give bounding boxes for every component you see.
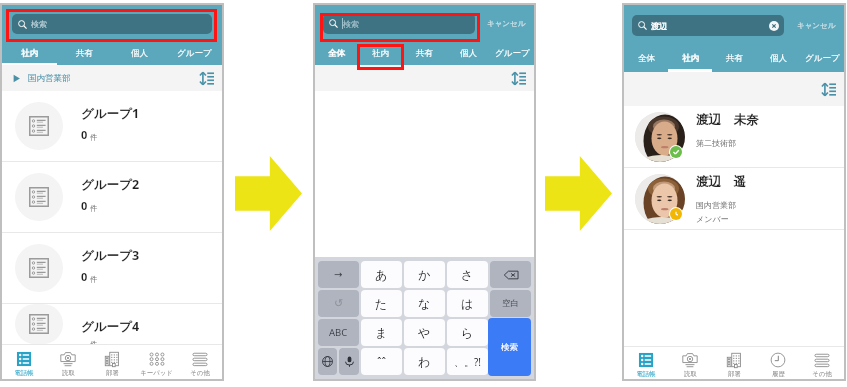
staticText: 検索 xyxy=(501,342,518,353)
staticText: 、。?! xyxy=(454,355,482,369)
staticText: キャンセル xyxy=(797,21,836,30)
button[interactable]: キャンセル xyxy=(797,21,836,30)
staticText: グループ4 xyxy=(81,318,140,335)
button[interactable]: ABC xyxy=(318,319,359,346)
staticText: 件 xyxy=(90,340,98,344)
staticText: 読取 xyxy=(684,370,697,378)
button[interactable]: 共有 xyxy=(712,45,756,72)
button[interactable]: 共有 xyxy=(57,42,112,65)
staticText: 検索 xyxy=(343,19,359,29)
staticText: た xyxy=(375,296,388,311)
button[interactable]: 、。?! xyxy=(447,348,488,375)
button[interactable]: 部署 xyxy=(712,347,756,379)
button[interactable]: グループ xyxy=(490,42,534,65)
staticText: グループ xyxy=(495,48,530,59)
staticText: 全体 xyxy=(328,48,345,59)
button[interactable]: ↺ xyxy=(318,290,359,317)
button[interactable]: 電話帳 xyxy=(624,347,668,379)
button[interactable]: グループ2 xyxy=(2,162,222,232)
staticText: あ xyxy=(375,267,388,282)
staticText: ま xyxy=(375,325,388,340)
button[interactable]: グループ4 xyxy=(2,304,222,344)
button[interactable]: グループ xyxy=(167,42,222,65)
staticText: キーパッド xyxy=(140,369,173,377)
staticText: 空白 xyxy=(502,298,519,309)
button[interactable]: は xyxy=(447,290,488,317)
staticText: 渡辺 xyxy=(651,21,667,31)
button[interactable]: Backspace xyxy=(490,261,531,288)
button[interactable]: 全体 xyxy=(315,42,358,65)
button[interactable]: Sort xyxy=(199,71,214,86)
button[interactable]: 履歴 xyxy=(756,347,800,379)
button[interactable]: た xyxy=(361,290,402,317)
button[interactable]: 渡辺 未奈 xyxy=(624,106,844,167)
button[interactable]: 渡辺 遥 xyxy=(624,168,844,229)
button[interactable]: Sort xyxy=(821,82,836,97)
staticText: グループ xyxy=(177,48,212,59)
button[interactable]: その他 xyxy=(800,347,844,379)
button[interactable]: ら xyxy=(447,319,488,346)
button[interactable]: 読取 xyxy=(46,345,90,379)
staticText: グループ3 xyxy=(81,247,140,264)
button[interactable]: Sort xyxy=(511,71,526,86)
staticText: か xyxy=(418,267,431,282)
staticText: → xyxy=(334,269,343,281)
staticText: は xyxy=(461,296,474,311)
staticText: 読取 xyxy=(62,369,75,377)
button[interactable]: 読取 xyxy=(668,347,712,379)
button[interactable]: Microphone xyxy=(339,348,359,375)
button[interactable]: その他 xyxy=(178,345,222,379)
button[interactable]: な xyxy=(404,290,445,317)
button[interactable]: 個人 xyxy=(446,42,490,65)
staticText: 共有 xyxy=(76,48,93,59)
button[interactable]: や xyxy=(404,319,445,346)
staticText: 件 xyxy=(90,275,98,284)
staticText: 社内 xyxy=(682,53,699,64)
staticText: 検索 xyxy=(31,19,47,29)
button[interactable]: 個人 xyxy=(756,45,800,72)
button[interactable]: 社内 xyxy=(668,45,712,72)
button[interactable]: グループ3 xyxy=(2,233,222,303)
button[interactable]: 社内 xyxy=(358,42,402,65)
staticText: な xyxy=(418,296,431,311)
button[interactable]: 全体 xyxy=(624,45,668,72)
button[interactable]: グループ1 xyxy=(2,91,222,161)
button[interactable]: グループ xyxy=(800,45,844,72)
staticText: ˆˆ xyxy=(377,354,387,369)
staticText: グループ2 xyxy=(81,176,140,193)
button[interactable]: ˆˆ xyxy=(361,348,402,375)
button[interactable]: か xyxy=(404,261,445,288)
staticText: 個人 xyxy=(131,48,148,59)
button[interactable]: あ xyxy=(361,261,402,288)
button[interactable]: 共有 xyxy=(402,42,446,65)
button[interactable]: Globe xyxy=(318,348,337,375)
button[interactable]: 空白 xyxy=(490,290,531,317)
button[interactable]: わ xyxy=(404,348,445,375)
staticText: 渡辺 遥 xyxy=(696,173,746,190)
button[interactable]: 検索 xyxy=(323,13,475,34)
staticText: その他 xyxy=(190,369,210,377)
staticText: 部署 xyxy=(728,370,741,378)
staticText: わ xyxy=(418,354,431,369)
staticText: ら xyxy=(461,325,474,340)
button[interactable]: キャンセル xyxy=(487,19,526,28)
button[interactable]: 検索 xyxy=(488,318,531,376)
staticText: その他 xyxy=(812,370,832,378)
button[interactable]: → xyxy=(318,261,359,288)
staticText: ABC xyxy=(329,326,348,339)
staticText: メンバー xyxy=(696,214,729,224)
button[interactable]: Clear xyxy=(769,21,779,31)
staticText: 件 xyxy=(90,133,98,142)
button[interactable]: 電話帳 xyxy=(2,345,46,379)
staticText: グループ1 xyxy=(81,105,140,122)
button[interactable]: 個人 xyxy=(112,42,167,65)
staticText: 電話帳 xyxy=(14,369,34,377)
button[interactable]: 社内 xyxy=(2,42,57,65)
button[interactable]: さ xyxy=(447,261,488,288)
button[interactable]: 検索 xyxy=(12,14,212,34)
staticText: 件 xyxy=(90,204,98,213)
button[interactable]: 渡辺 xyxy=(632,15,784,36)
button[interactable]: 部署 xyxy=(90,345,134,379)
button[interactable]: キーパッド xyxy=(134,345,178,379)
button[interactable]: ま xyxy=(361,319,402,346)
